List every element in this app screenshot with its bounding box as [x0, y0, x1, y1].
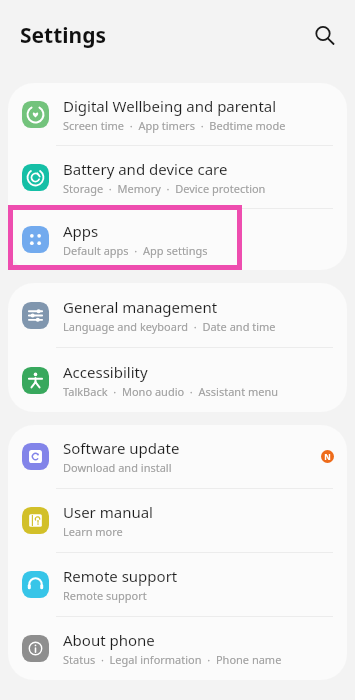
staticText: Default apps · App settings [63, 243, 208, 258]
staticText: Storage · Memory · Device protection [63, 181, 266, 196]
staticText: Language and keyboard · Date and time [63, 319, 276, 334]
staticText: Learn more [63, 524, 123, 539]
button[interactable]: General management [8, 283, 347, 347]
staticText: General management [63, 297, 218, 317]
button[interactable]: Remote support [8, 553, 347, 616]
button[interactable]: Software update [8, 425, 347, 488]
staticText: TalkBack · Mono audio · Assistant menu [63, 384, 279, 399]
button[interactable]: Digital Wellbeing and parental controls [8, 83, 347, 145]
staticText: N [324, 451, 331, 462]
staticText: Status · Legal information · Phone name [63, 652, 282, 667]
staticText: Remote support [63, 566, 178, 586]
staticText: Battery and device care [63, 159, 228, 179]
staticText: Accessibility [63, 362, 148, 382]
staticText: Download and install [63, 460, 172, 475]
staticText: Software update [63, 438, 180, 458]
button[interactable]: Search [306, 17, 344, 55]
staticText: Digital Wellbeing and parental controls [63, 96, 334, 116]
staticText: About phone [63, 630, 155, 650]
button[interactable]: Battery and device care [8, 146, 347, 208]
button[interactable]: Apps [8, 209, 347, 270]
staticText: Apps [63, 221, 99, 241]
staticText: Settings [20, 21, 107, 50]
button[interactable]: Accessibility [8, 348, 347, 412]
button[interactable]: About phone [8, 617, 347, 680]
staticText: User manual [63, 502, 153, 522]
button[interactable]: User manual [8, 489, 347, 552]
staticText: Screen time · App timers · Bedtime mode [63, 118, 286, 133]
staticText: Remote support [63, 588, 147, 603]
